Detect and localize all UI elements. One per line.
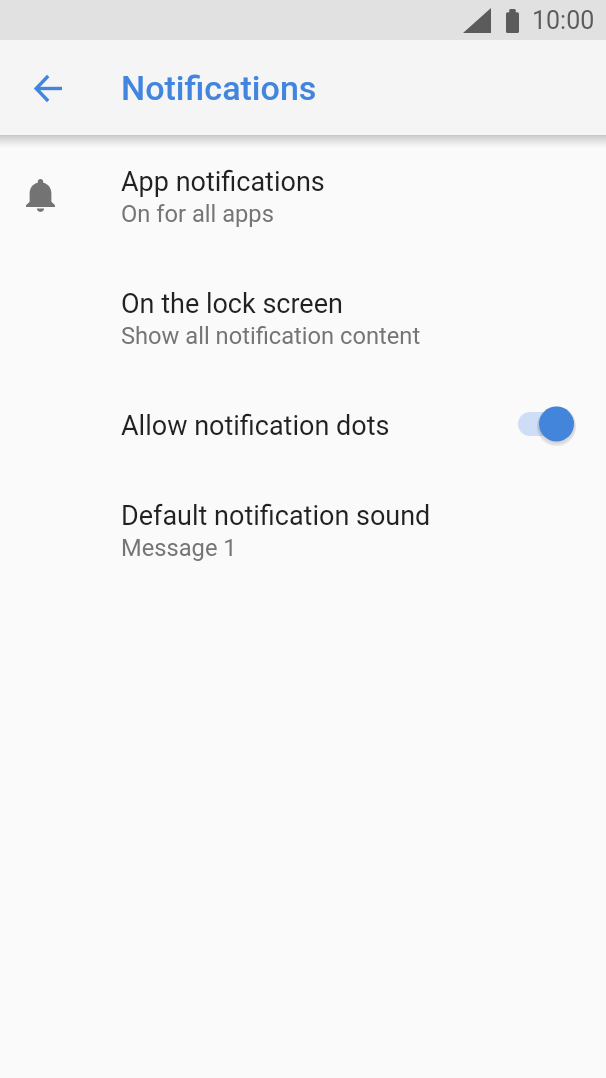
staticText: App notifications bbox=[121, 166, 325, 198]
button[interactable]: Default notification sound bbox=[0, 477, 606, 599]
staticText: On for all apps bbox=[121, 200, 274, 228]
staticText: Allow notification dots bbox=[121, 410, 390, 442]
button[interactable]: Allow notification dots bbox=[0, 387, 606, 477]
staticText: Default notification sound bbox=[121, 500, 431, 532]
button[interactable]: Allow notification dots bbox=[508, 397, 584, 451]
staticText: On the lock screen bbox=[121, 288, 343, 320]
button[interactable]: App notifications bbox=[0, 143, 606, 265]
button[interactable]: Navigate up bbox=[19, 59, 77, 117]
staticText: Message 1 bbox=[121, 534, 237, 562]
staticText: Show all notification content bbox=[121, 322, 421, 350]
staticText: Notifications bbox=[121, 68, 317, 108]
button[interactable]: On the lock screen bbox=[0, 265, 606, 387]
staticText: 10:00 bbox=[532, 6, 595, 35]
